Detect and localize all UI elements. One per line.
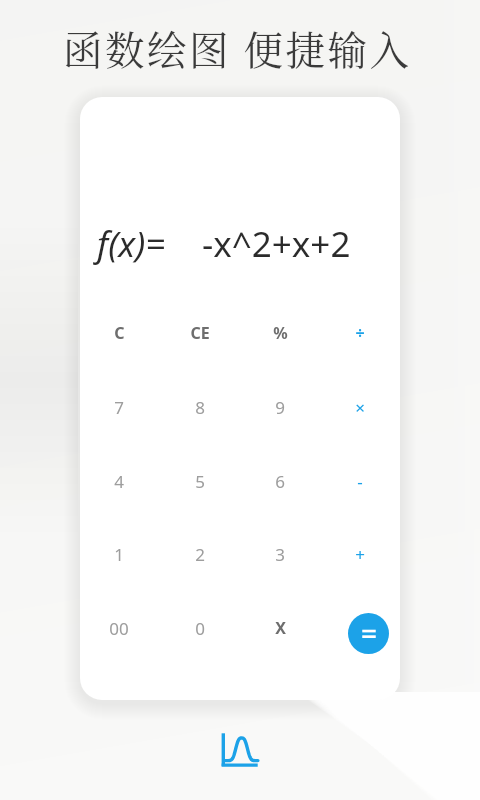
staticText: 00 [109, 617, 129, 640]
button[interactable]: Graph plot [219, 730, 261, 772]
button[interactable]: 7 [80, 370, 159, 444]
staticText: 7 [114, 396, 124, 419]
button[interactable]: C [80, 296, 159, 370]
button[interactable]: + [320, 517, 400, 591]
button[interactable]: 5 [160, 444, 240, 518]
button[interactable]: 3 [240, 517, 320, 591]
button[interactable]: × [320, 370, 400, 444]
staticText: ÷ [355, 322, 365, 344]
staticText: 3 [275, 543, 285, 566]
staticText: - [357, 470, 363, 493]
button[interactable]: CE [160, 296, 240, 370]
button[interactable]: 6 [240, 444, 320, 518]
button[interactable]: - [320, 444, 400, 518]
button[interactable]: 00 [80, 591, 159, 665]
staticText: -x^2+x+2 [202, 220, 351, 268]
button[interactable]: 8 [160, 370, 240, 444]
staticText: 5 [195, 470, 205, 493]
staticText: 2 [195, 543, 205, 566]
button[interactable]: 4 [80, 444, 159, 518]
staticText: CE [190, 322, 210, 344]
staticText: f(x)= [97, 220, 166, 268]
staticText: 6 [275, 470, 285, 493]
staticText: 8 [195, 396, 205, 419]
button[interactable]: 1 [80, 517, 159, 591]
button[interactable]: X [240, 591, 320, 665]
staticText: X [275, 617, 286, 639]
button[interactable]: % [240, 296, 320, 370]
button[interactable]: 0 [160, 591, 240, 665]
staticText: C [114, 322, 125, 344]
button[interactable]: Equals [348, 613, 389, 654]
staticText: 0 [195, 617, 205, 640]
button[interactable]: ÷ [320, 296, 400, 370]
staticText: 函数绘图 便捷输入 [63, 20, 412, 77]
button[interactable]: 2 [160, 517, 240, 591]
button[interactable]: 9 [240, 370, 320, 444]
staticText: 4 [114, 470, 124, 493]
staticText: 1 [114, 543, 124, 566]
staticText: 9 [275, 396, 285, 419]
staticText: × [355, 396, 365, 419]
staticText: % [273, 322, 288, 344]
staticText: + [355, 543, 365, 566]
